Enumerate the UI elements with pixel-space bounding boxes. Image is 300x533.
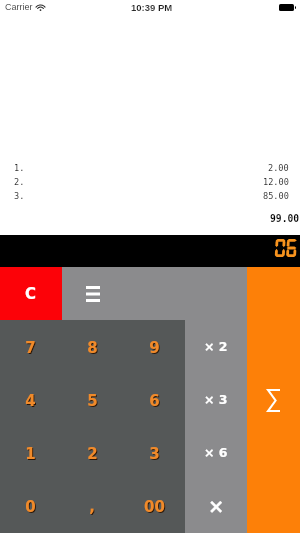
staticText: 3. bbox=[14, 191, 25, 201]
staticText: 6 bbox=[150, 393, 161, 410]
button[interactable]: 0 bbox=[0, 480, 61, 533]
staticText: 5 bbox=[88, 393, 99, 410]
staticText: 0 bbox=[25, 498, 36, 515]
staticText: 7 bbox=[26, 340, 37, 357]
staticText: 9 bbox=[149, 339, 160, 356]
staticText: 8 bbox=[87, 339, 98, 356]
staticText: 5 bbox=[87, 392, 98, 409]
staticText: 2 bbox=[87, 445, 98, 462]
staticText: 9 bbox=[150, 340, 161, 357]
staticText: 7 bbox=[25, 339, 36, 356]
button[interactable]: 5 bbox=[61, 374, 123, 427]
staticText: × 2 bbox=[204, 339, 228, 354]
staticText: 00 bbox=[144, 498, 165, 515]
staticText: , bbox=[90, 499, 96, 516]
staticText: 3 bbox=[149, 445, 160, 462]
staticText: 00 bbox=[145, 499, 166, 516]
staticText: 8 bbox=[88, 340, 99, 357]
staticText: × bbox=[208, 495, 225, 518]
staticText: C bbox=[25, 285, 37, 302]
staticText: 6 bbox=[149, 392, 160, 409]
button[interactable]: 2 bbox=[61, 427, 123, 480]
staticText: 85.00 bbox=[263, 191, 289, 201]
button[interactable]: × 6 bbox=[185, 427, 247, 480]
button[interactable]: 4 bbox=[0, 374, 61, 427]
staticText: 99.00 bbox=[270, 213, 300, 224]
button[interactable]: × 3 bbox=[185, 374, 247, 427]
staticText: 3 bbox=[150, 446, 161, 463]
staticText: 12.00 bbox=[263, 177, 289, 187]
staticText: 10:39 PM bbox=[131, 2, 173, 13]
staticText: , bbox=[89, 498, 95, 515]
button[interactable]: Multiply bbox=[185, 480, 247, 533]
staticText: × 3 bbox=[204, 392, 228, 407]
button[interactable]: Sum bbox=[247, 267, 300, 533]
button[interactable]: Menu bbox=[62, 267, 247, 320]
staticText: × 6 bbox=[204, 445, 228, 460]
staticText: 2.00 bbox=[268, 163, 289, 173]
button[interactable]: 3 bbox=[123, 427, 185, 480]
staticText: Carrier bbox=[5, 2, 33, 12]
button[interactable]: 1 bbox=[0, 427, 61, 480]
staticText: 0 bbox=[26, 499, 37, 516]
staticText: 4 bbox=[26, 393, 37, 410]
staticText: 4 bbox=[25, 392, 36, 409]
button[interactable]: 9 bbox=[123, 320, 185, 374]
button[interactable]: C bbox=[0, 267, 62, 320]
staticText: 2 bbox=[88, 446, 99, 463]
button[interactable]: 00 bbox=[123, 480, 185, 533]
button[interactable]: 8 bbox=[61, 320, 123, 374]
staticText: 1 bbox=[26, 446, 37, 463]
button[interactable]: , bbox=[61, 480, 123, 533]
staticText: 1. bbox=[14, 163, 25, 173]
button[interactable]: 6 bbox=[123, 374, 185, 427]
button[interactable]: 7 bbox=[0, 320, 61, 374]
staticText: 2. bbox=[14, 177, 25, 187]
staticText: 1 bbox=[25, 445, 36, 462]
button[interactable]: × 2 bbox=[185, 320, 247, 374]
